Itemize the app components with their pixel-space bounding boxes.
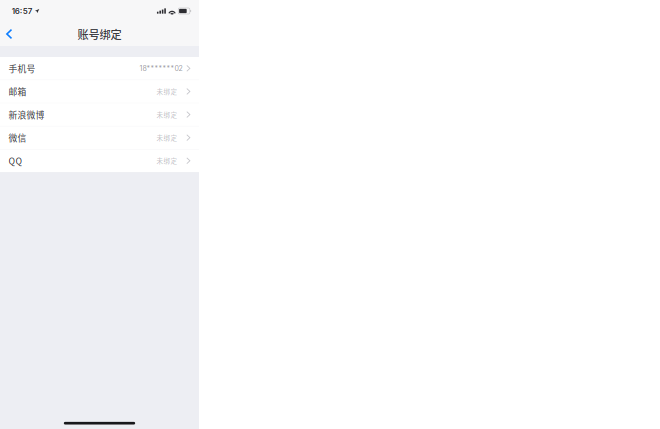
staticText: 新浪微博 — [9, 108, 45, 121]
button[interactable]: 手机号 — [0, 57, 199, 80]
staticText: 账号绑定 — [77, 26, 121, 42]
staticText: 16:57 — [12, 6, 33, 16]
button[interactable]: 新浪微博 — [0, 103, 199, 126]
button[interactable]: 邮箱 — [0, 80, 199, 103]
staticText: 未绑定 — [156, 133, 177, 142]
button[interactable]: Back — [0, 22, 20, 46]
staticText: 手机号 — [9, 62, 36, 75]
staticText: 微信 — [9, 131, 27, 144]
staticText: 18*******02 — [139, 64, 182, 73]
button[interactable]: 微信 — [0, 126, 199, 149]
staticText: 未绑定 — [156, 110, 177, 119]
staticText: QQ — [9, 154, 23, 167]
staticText: 邮箱 — [9, 85, 27, 98]
button[interactable]: QQ — [0, 149, 199, 172]
staticText: 未绑定 — [156, 87, 177, 96]
staticText: 未绑定 — [156, 156, 177, 165]
